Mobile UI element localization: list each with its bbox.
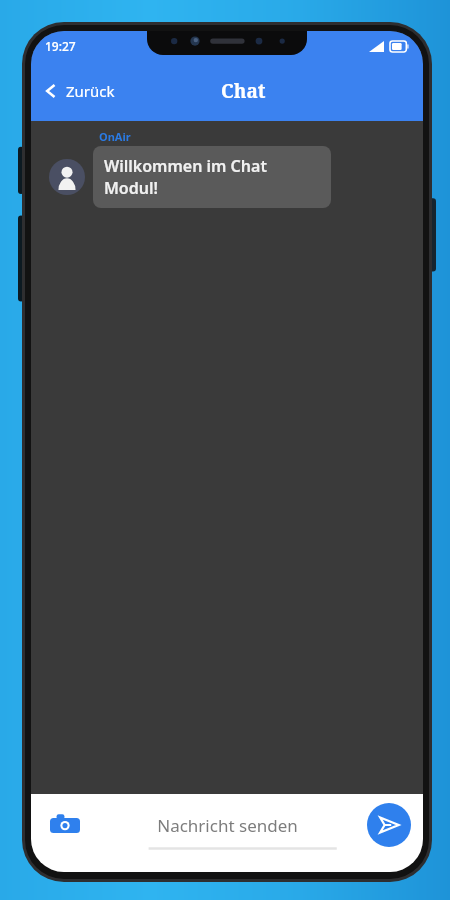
staticText: Nachricht senden (157, 814, 298, 837)
button[interactable]: Senden (367, 803, 411, 847)
button[interactable]: Nachricht senden (87, 794, 367, 856)
staticText: 19:27 (45, 38, 76, 54)
staticText: Zurück (66, 81, 115, 101)
staticText: OnAir (99, 129, 131, 144)
button[interactable]: Kamera (43, 803, 87, 847)
staticText: Chat (221, 78, 266, 104)
button[interactable]: Zurück (31, 73, 127, 109)
button[interactable]: Willkommen im Chat Modul! (93, 146, 331, 208)
staticText: Willkommen im Chat Modul! (104, 155, 320, 199)
